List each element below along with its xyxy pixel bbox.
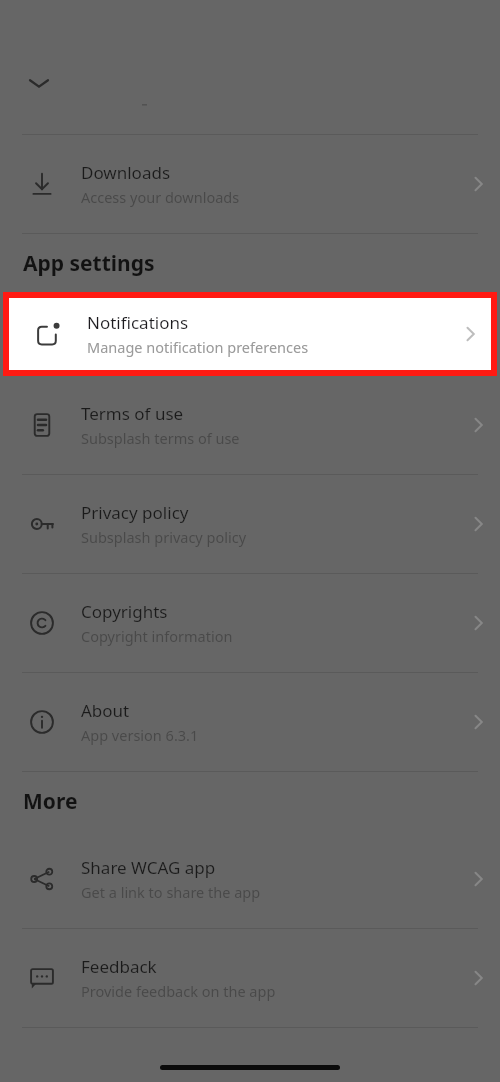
staticText: App version 6.3.1 <box>81 725 199 745</box>
staticText: Get a link to share the app <box>81 882 261 902</box>
staticText: Downloads <box>81 161 171 184</box>
button[interactable]: Notifications <box>9 298 491 370</box>
staticText: Terms of use <box>81 402 184 425</box>
staticText: About <box>81 699 130 722</box>
staticText: App settings <box>23 249 155 278</box>
staticText: Notifications <box>87 311 189 334</box>
button[interactable]: Privacy policy <box>0 475 500 573</box>
staticText: Share WCAG app <box>81 856 216 879</box>
button[interactable]: Share WCAG app <box>0 830 500 928</box>
staticText: Privacy policy <box>81 501 189 524</box>
button[interactable]: Feedback <box>0 929 500 1027</box>
staticText: Subsplash terms of use <box>81 428 240 448</box>
button[interactable]: Copyrights <box>0 574 500 672</box>
button[interactable]: Terms of use <box>0 376 500 474</box>
staticText: Feedback <box>81 955 157 978</box>
staticText: Provide feedback on the app <box>81 981 276 1001</box>
staticText: Access your downloads <box>81 187 240 207</box>
staticText: Copyrights <box>81 600 168 623</box>
staticText: Subsplash privacy policy <box>81 527 247 547</box>
staticText: More <box>23 787 78 816</box>
button[interactable]: About <box>0 673 500 771</box>
staticText: Copyright information <box>81 626 233 646</box>
staticText: Manage notification preferences <box>87 337 309 357</box>
button[interactable]: Downloads <box>0 135 500 233</box>
button[interactable]: Collapse section <box>22 66 56 100</box>
